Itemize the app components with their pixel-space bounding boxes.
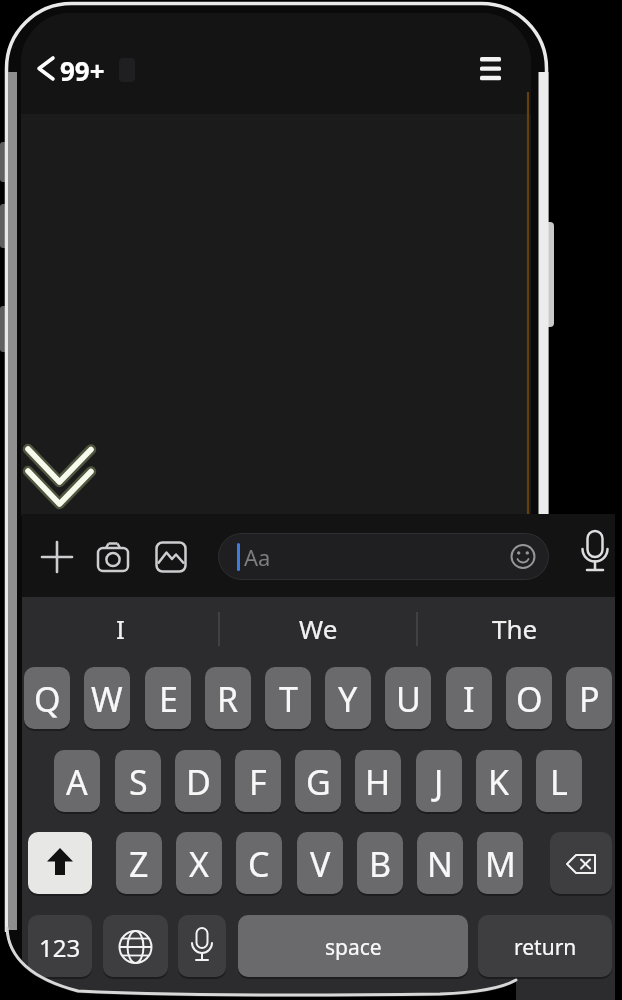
button[interactable]: L: [536, 750, 582, 814]
staticText: We: [299, 611, 338, 646]
button[interactable]: Q: [24, 667, 70, 731]
button[interactable]: [573, 526, 617, 580]
staticText: F: [249, 759, 267, 805]
button[interactable]: I: [22, 600, 219, 656]
button[interactable]: [103, 915, 168, 979]
button[interactable]: Z: [116, 832, 162, 896]
button[interactable]: R: [205, 667, 251, 731]
staticText: return: [514, 933, 577, 962]
button[interactable]: [28, 832, 92, 896]
staticText: G: [306, 759, 331, 805]
button[interactable]: V: [297, 832, 343, 896]
button[interactable]: H: [355, 750, 401, 814]
staticText: P: [579, 676, 600, 722]
staticText: D: [186, 759, 211, 805]
button[interactable]: [470, 46, 512, 90]
button[interactable]: We: [219, 600, 417, 656]
staticText: T: [279, 676, 298, 722]
staticText: Aa: [244, 542, 271, 572]
button[interactable]: I: [446, 667, 492, 731]
staticText: 99+: [60, 53, 105, 88]
button[interactable]: A: [54, 750, 100, 814]
button[interactable]: [30, 48, 56, 88]
button[interactable]: [550, 832, 612, 896]
button[interactable]: Y: [325, 667, 371, 731]
button[interactable]: [36, 536, 78, 578]
button[interactable]: S: [115, 750, 161, 814]
staticText: I: [463, 676, 475, 722]
button[interactable]: F: [235, 750, 281, 814]
button[interactable]: P: [566, 667, 612, 731]
button[interactable]: B: [357, 832, 403, 896]
button[interactable]: N: [417, 832, 463, 896]
staticText: C: [248, 841, 270, 887]
button[interactable]: K: [476, 750, 522, 814]
staticText: O: [516, 676, 543, 722]
staticText: R: [217, 676, 239, 722]
button[interactable]: Aa: [218, 533, 549, 580]
button[interactable]: T: [265, 667, 311, 731]
staticText: X: [189, 841, 209, 887]
button[interactable]: J: [416, 750, 462, 814]
staticText: K: [488, 759, 510, 805]
staticText: 123: [39, 931, 81, 964]
staticText: H: [365, 759, 391, 805]
button[interactable]: W: [84, 667, 130, 731]
staticText: J: [434, 759, 444, 805]
staticText: Q: [34, 676, 61, 722]
button[interactable]: [92, 536, 134, 578]
button[interactable]: space: [238, 915, 468, 979]
button[interactable]: 123: [28, 915, 92, 979]
button[interactable]: G: [295, 750, 341, 814]
staticText: B: [369, 841, 392, 887]
button[interactable]: O: [506, 667, 552, 731]
button[interactable]: X: [176, 832, 222, 896]
button[interactable]: C: [236, 832, 282, 896]
staticText: A: [66, 759, 88, 805]
staticText: M: [485, 841, 516, 887]
button[interactable]: The: [417, 600, 613, 656]
staticText: L: [550, 759, 568, 805]
button[interactable]: U: [385, 667, 431, 731]
staticText: I: [116, 611, 125, 646]
staticText: space: [325, 933, 382, 962]
button[interactable]: [178, 915, 226, 979]
staticText: U: [396, 676, 421, 722]
button[interactable]: M: [477, 832, 523, 896]
button[interactable]: return: [478, 915, 612, 979]
staticText: E: [159, 676, 178, 722]
staticText: S: [129, 759, 148, 805]
staticText: Y: [338, 676, 358, 722]
staticText: W: [91, 676, 123, 722]
staticText: Z: [129, 841, 149, 887]
staticText: N: [427, 841, 453, 887]
button[interactable]: [150, 536, 192, 578]
staticText: V: [310, 841, 331, 887]
button[interactable]: E: [145, 667, 191, 731]
staticText: The: [492, 611, 538, 646]
button[interactable]: D: [175, 750, 221, 814]
